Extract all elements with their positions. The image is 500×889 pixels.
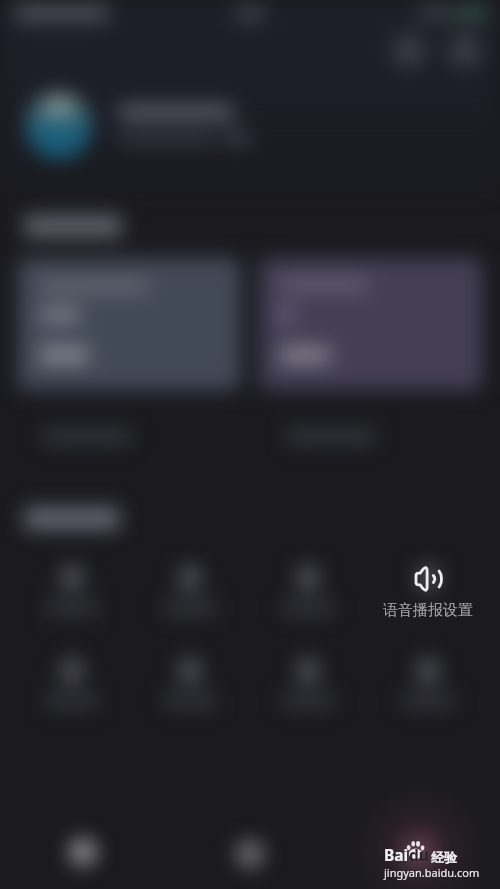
button[interactable] [392,34,426,68]
button[interactable]: 语音播报设置 [369,558,487,630]
button[interactable] [260,258,482,390]
button[interactable] [448,34,482,68]
button[interactable] [404,840,432,868]
other: 语音播报设置 [413,565,443,593]
button[interactable] [236,840,264,868]
staticText: 语音播报设置 [383,601,473,620]
button[interactable] [69,838,97,866]
staticText: jingyan.baidu.com [384,865,480,880]
button[interactable] [18,258,240,390]
staticText: 经验 [431,849,457,865]
staticText: Bai [384,844,409,865]
staticText: du [409,844,429,865]
